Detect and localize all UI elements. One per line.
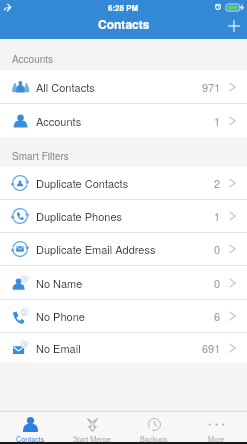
staticText: 6:28 PM (108, 2, 139, 13)
staticText: Start Merge (73, 434, 111, 442)
staticText: Accounts (12, 52, 54, 66)
staticText: 0 (214, 241, 221, 257)
staticText: Duplicate Email Address (36, 241, 156, 257)
button[interactable]: Accounts (0, 104, 247, 137)
button[interactable]: No Phone (0, 300, 247, 333)
button[interactable]: All Contacts (0, 70, 247, 104)
button[interactable]: Duplicate Contacts (0, 167, 247, 200)
staticText: No Name (36, 275, 83, 291)
button[interactable]: Backups (123, 412, 185, 442)
staticText: 1 (214, 208, 221, 224)
staticText: More (208, 434, 225, 442)
staticText: No Phone (36, 308, 85, 324)
button[interactable]: Duplicate Email Address (0, 233, 247, 266)
button[interactable]: Add contact (221, 13, 247, 39)
button[interactable]: Start Merge (61, 412, 123, 442)
staticText: Backups (140, 434, 168, 442)
staticText: No Email (36, 340, 81, 356)
button[interactable]: More (185, 412, 247, 442)
staticText: 971 (202, 79, 221, 95)
staticText: 2 (214, 175, 221, 191)
staticText: Duplicate Contacts (36, 175, 129, 191)
staticText: Smart Filters (12, 149, 69, 163)
staticText: Accounts (36, 113, 82, 129)
staticText: 691 (202, 340, 221, 356)
staticText: Contacts (16, 434, 45, 442)
button[interactable]: Duplicate Phones (0, 200, 247, 233)
button[interactable]: No Email (0, 333, 247, 363)
button[interactable]: No Name (0, 266, 247, 300)
button[interactable]: Contacts (0, 412, 61, 442)
staticText: 1 (214, 113, 221, 129)
staticText: Contacts (98, 15, 150, 32)
staticText: 6 (214, 308, 221, 324)
staticText: 0 (214, 275, 221, 291)
staticText: All Contacts (36, 79, 95, 95)
staticText: Duplicate Phones (36, 208, 123, 224)
